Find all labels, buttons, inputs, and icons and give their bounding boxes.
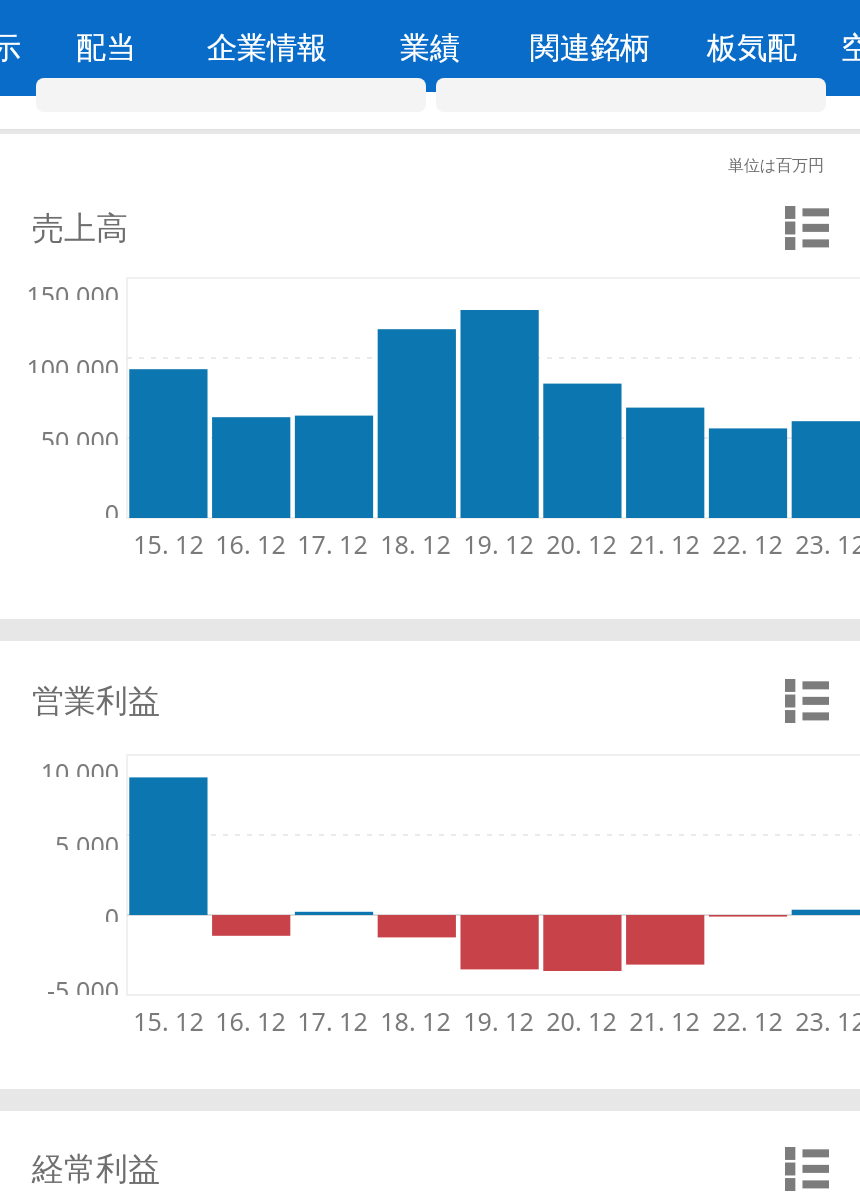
staticText: 板気配 — [707, 29, 797, 67]
staticText: 16. 12 — [215, 527, 286, 561]
staticText: 150,000 — [26, 278, 119, 300]
button[interactable] — [436, 78, 826, 112]
button[interactable]: 表を表示 — [780, 674, 834, 728]
button[interactable]: 示 — [0, 0, 81, 96]
staticText: 企業情報 — [207, 29, 327, 67]
staticText: 23. 12 — [795, 527, 860, 561]
staticText: -5,000 — [47, 973, 119, 995]
button[interactable]: 表を表示 — [780, 201, 834, 255]
staticText: 17. 12 — [297, 1004, 368, 1038]
staticText: 21. 12 — [629, 1004, 700, 1038]
staticText: 100,000 — [26, 351, 119, 373]
staticText: 10,000 — [40, 755, 119, 777]
staticText: 23. 12 — [795, 1004, 860, 1038]
button[interactable]: 配当 — [31, 0, 181, 96]
staticText: 売上高 — [32, 208, 128, 248]
staticText: 空 — [841, 29, 860, 67]
button[interactable] — [36, 78, 426, 112]
staticText: 19. 12 — [463, 527, 534, 561]
staticText: 5,000 — [55, 828, 119, 850]
staticText: 関連銘柄 — [530, 29, 650, 67]
staticText: 経常利益 — [32, 1149, 160, 1189]
button[interactable]: 表を表示 — [780, 1142, 834, 1196]
staticText: 16. 12 — [215, 1004, 286, 1038]
staticText: 22. 12 — [712, 1004, 783, 1038]
button[interactable]: 板気配 — [677, 0, 827, 96]
button[interactable]: 関連銘柄 — [515, 0, 665, 96]
staticText: 22. 12 — [712, 527, 783, 561]
staticText: 17. 12 — [297, 527, 368, 561]
staticText: 20. 12 — [546, 1004, 617, 1038]
staticText: 業績 — [400, 29, 460, 67]
staticText: 営業利益 — [32, 681, 160, 721]
staticText: 0 — [104, 496, 119, 518]
staticText: 15. 12 — [133, 1004, 204, 1038]
staticText: 示 — [0, 29, 21, 67]
staticText: 0 — [104, 900, 119, 922]
staticText: 単位は百万円 — [0, 156, 824, 176]
staticText: 20. 12 — [546, 527, 617, 561]
button[interactable]: 空 — [781, 0, 860, 96]
staticText: 19. 12 — [463, 1004, 534, 1038]
staticText: 15. 12 — [133, 527, 204, 561]
button[interactable]: 企業情報 — [192, 0, 342, 96]
staticText: 18. 12 — [380, 1004, 451, 1038]
button[interactable]: 業績 — [355, 0, 505, 96]
staticText: 50,000 — [40, 423, 119, 445]
staticText: 21. 12 — [629, 527, 700, 561]
staticText: 配当 — [76, 29, 136, 67]
staticText: 18. 12 — [380, 527, 451, 561]
